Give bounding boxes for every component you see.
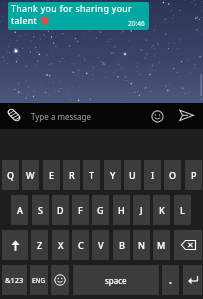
button[interactable]: U	[124, 160, 141, 190]
button[interactable]: R	[63, 160, 80, 190]
button[interactable]: W	[22, 160, 39, 190]
button[interactable]: C	[72, 230, 89, 260]
staticText: P	[191, 169, 197, 181]
button[interactable]: L	[174, 195, 191, 225]
staticText: R	[69, 169, 75, 181]
staticText: N	[138, 239, 145, 251]
staticText: M	[157, 239, 166, 251]
staticText: B	[119, 239, 125, 251]
button[interactable]: B	[113, 230, 130, 260]
button[interactable]: .	[162, 265, 179, 295]
button[interactable]: ENG	[30, 265, 48, 295]
button[interactable]	[6, 107, 22, 123]
button[interactable]: S	[32, 195, 49, 225]
button[interactable]: M	[153, 230, 170, 260]
button[interactable]	[151, 110, 164, 123]
button[interactable]	[174, 230, 202, 260]
staticText: &123	[5, 275, 24, 285]
staticText: .	[169, 273, 172, 287]
button[interactable]: E	[43, 160, 60, 190]
button[interactable]: G	[92, 195, 109, 225]
staticText: W	[26, 169, 35, 181]
staticText: V	[98, 239, 104, 251]
staticText: Z	[37, 239, 43, 251]
staticText: Q	[7, 169, 15, 181]
button[interactable]: A	[11, 195, 28, 225]
button[interactable]: Thank you for sharing your	[8, 2, 149, 30]
button[interactable]: K	[153, 195, 170, 225]
staticText: talent	[11, 15, 40, 27]
button[interactable]: space	[73, 265, 159, 295]
button[interactable]	[2, 230, 28, 260]
staticText: C	[78, 239, 84, 251]
staticText: H	[118, 204, 125, 216]
button[interactable]: &123	[2, 265, 27, 295]
staticText: F	[78, 204, 83, 216]
staticText: E	[49, 169, 55, 181]
button[interactable]: P	[185, 160, 202, 190]
button[interactable]: Z	[31, 230, 48, 260]
staticText: X	[58, 239, 64, 251]
staticText: Y	[110, 169, 116, 181]
staticText: G	[97, 204, 104, 216]
staticText: ENG	[32, 276, 46, 285]
staticText: I	[151, 169, 155, 181]
button[interactable]: H	[113, 195, 130, 225]
button[interactable]	[51, 265, 69, 295]
button[interactable]: J	[133, 195, 150, 225]
button[interactable]: D	[52, 195, 69, 225]
staticText: J	[140, 204, 143, 216]
staticText: O	[169, 169, 177, 181]
button[interactable]: Q	[2, 160, 19, 190]
button[interactable]	[178, 109, 195, 122]
staticText: L	[180, 204, 185, 216]
staticText: T	[89, 169, 95, 181]
staticText: D	[57, 204, 64, 216]
staticText: Type a message	[31, 111, 92, 122]
button[interactable]: I	[144, 160, 161, 190]
button[interactable]: X	[52, 230, 69, 260]
button[interactable]: F	[72, 195, 89, 225]
staticText: K	[159, 204, 165, 216]
staticText: U	[129, 169, 136, 181]
button[interactable]: O	[164, 160, 181, 190]
staticText: A	[17, 204, 23, 216]
staticText: space	[105, 275, 127, 286]
button[interactable]: Y	[104, 160, 121, 190]
button[interactable]	[183, 265, 202, 295]
button[interactable]: N	[133, 230, 150, 260]
staticText: S	[38, 204, 43, 216]
button[interactable]: T	[83, 160, 100, 190]
button[interactable]: V	[92, 230, 109, 260]
staticText: 20:46	[128, 19, 145, 28]
staticText: Thank you for sharing your	[11, 3, 133, 15]
